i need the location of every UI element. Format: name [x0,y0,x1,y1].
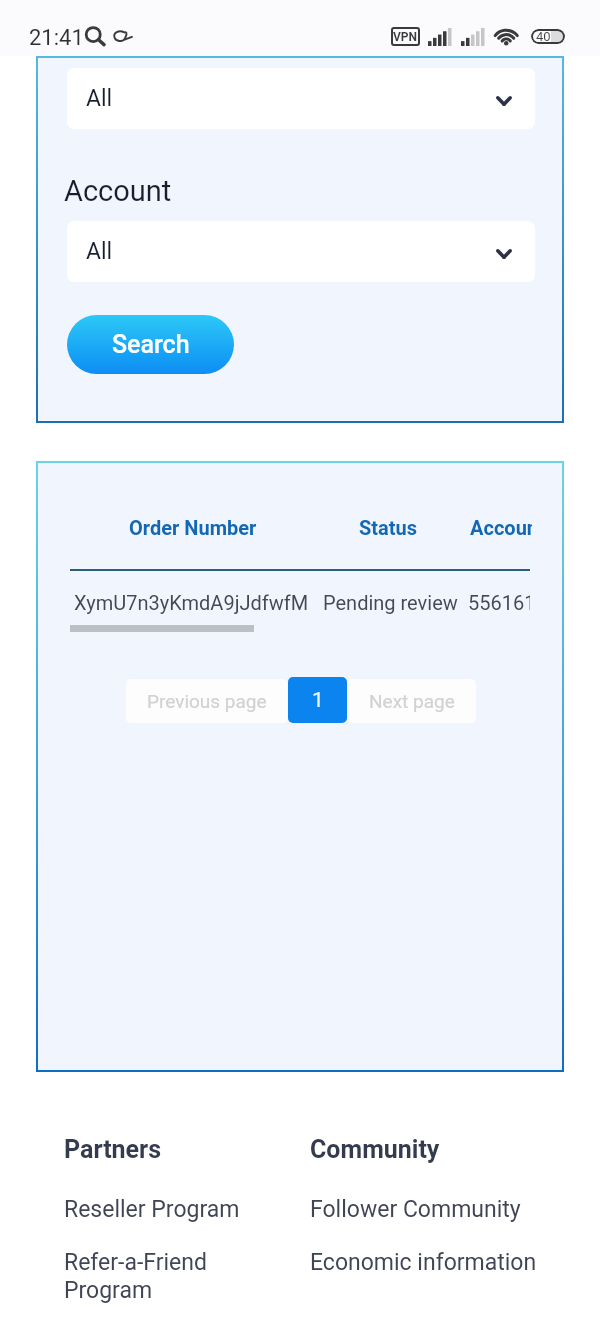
staticText: 556161 [468,591,530,614]
staticText: Follower Community [310,1196,521,1223]
staticText: Economic information [310,1249,537,1276]
staticText: Pending review [323,591,458,614]
staticText: Account [470,516,532,539]
staticText: Previous page [147,690,267,712]
staticText: Next page [369,690,455,712]
button[interactable]: Economic information [310,1249,537,1276]
staticText: Refer-a-Friend Program [64,1249,207,1303]
button[interactable]: All [67,221,535,282]
staticText: 1 [312,688,324,713]
button[interactable]: Refer-a-Friend Program [64,1249,207,1303]
button[interactable]: 1 [288,677,347,723]
button[interactable]: Community [310,1135,440,1164]
button[interactable]: Partners [64,1135,162,1164]
button[interactable]: Follower Community [310,1196,521,1223]
staticText: Search [112,330,190,359]
button[interactable]: Next page [347,679,476,723]
staticText: 40 [536,29,551,44]
button[interactable]: Alipay [113,30,132,42]
staticText: All [86,238,113,265]
button[interactable]: All [67,68,535,129]
button[interactable]: Search [67,315,234,374]
staticText: Account [64,174,172,208]
staticText: All [86,85,113,112]
button[interactable]: Reseller Program [64,1196,240,1223]
staticText: Reseller Program [64,1196,240,1223]
staticText: XymU7n3yKmdA9jJdfwfM [74,591,309,614]
staticText: Order Number [129,516,257,539]
staticText: VPN [393,30,418,44]
button[interactable]: Previous page [126,679,288,723]
staticText: 21:41 [29,25,84,51]
staticText: Status [359,516,418,539]
button[interactable]: Search [86,27,105,45]
